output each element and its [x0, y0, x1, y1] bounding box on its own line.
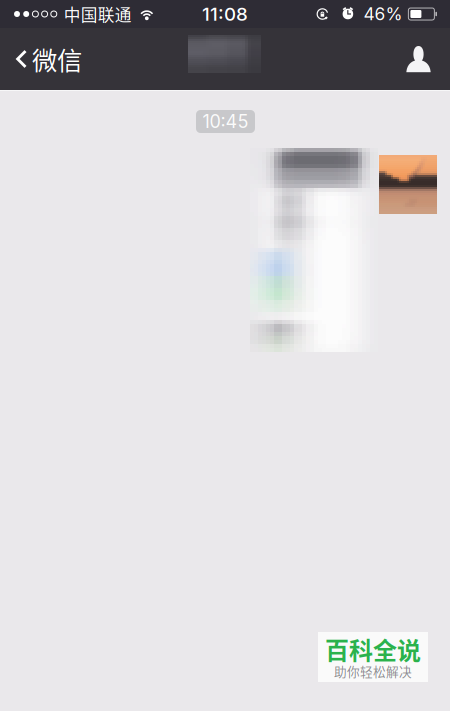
- staticText: 中国联通: [64, 2, 132, 26]
- button[interactable]: 微信: [0, 28, 92, 90]
- staticText: 助你轻松解决: [334, 662, 412, 680]
- staticText: 10:45: [202, 111, 248, 132]
- staticText: 11:08: [202, 3, 248, 25]
- staticText: 百科全说: [325, 632, 421, 666]
- button[interactable]: Contact info: [392, 28, 450, 90]
- staticText: 46%: [363, 3, 402, 24]
- staticText: 微信: [32, 41, 82, 77]
